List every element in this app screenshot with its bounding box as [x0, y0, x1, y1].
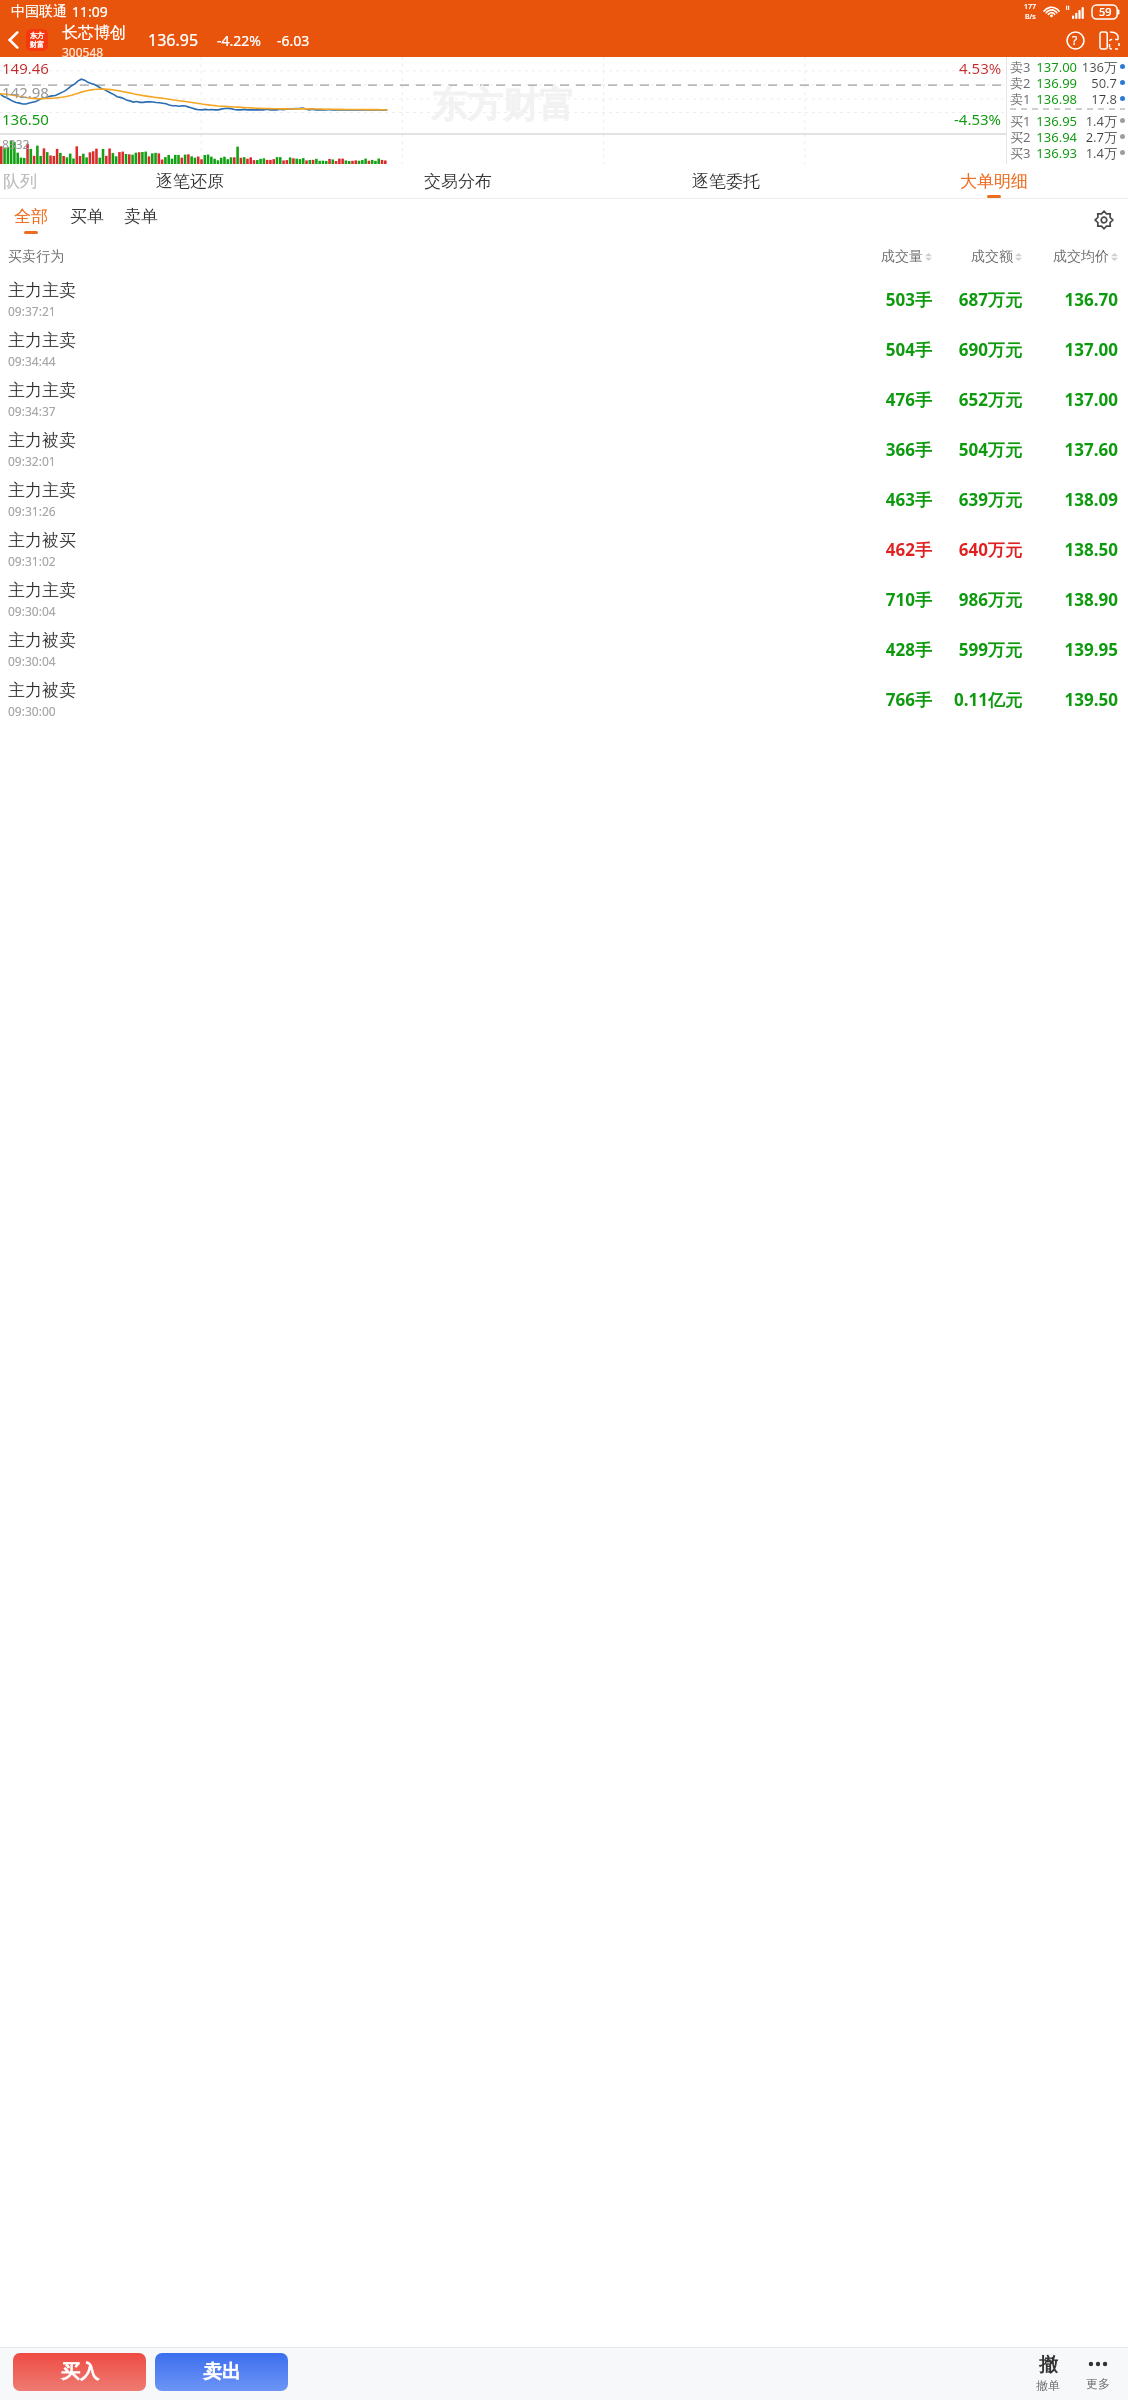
- staticText: 17.8万: [1081, 90, 1117, 106]
- staticText: 09:32:01: [8, 453, 56, 469]
- staticText: 队列: [3, 171, 37, 192]
- staticText: ?: [1072, 32, 1078, 48]
- staticText: 买单: [70, 206, 104, 227]
- button[interactable]: 买入: [13, 2353, 146, 2391]
- staticText: 59: [1099, 4, 1112, 19]
- button[interactable]: 主力主卖: [0, 374, 1128, 424]
- staticText: 136.50: [2, 109, 49, 129]
- staticText: 更多: [1086, 2376, 1110, 2391]
- button[interactable]: 撤: [1026, 2353, 1070, 2391]
- button[interactable]: 卖出: [155, 2353, 288, 2391]
- staticText: 撤单: [1036, 2378, 1060, 2391]
- staticText: 主力主卖: [8, 280, 76, 301]
- staticText: 710手: [844, 588, 932, 611]
- button[interactable]: 买2: [1010, 128, 1125, 144]
- button[interactable]: 队列: [0, 164, 56, 199]
- button[interactable]: 主力主卖: [0, 574, 1128, 624]
- staticText: 逐笔还原: [156, 171, 224, 192]
- staticText: 139.95: [1022, 638, 1118, 661]
- staticText: 主力主卖: [8, 330, 76, 351]
- staticText: 买卖行为: [8, 248, 64, 266]
- button[interactable]: 卖3: [1010, 58, 1125, 74]
- staticText: 主力被买: [8, 530, 76, 551]
- staticText: 138.90: [1022, 588, 1118, 611]
- staticText: 交易分布: [424, 171, 492, 192]
- staticText: 逐笔委托: [692, 171, 760, 192]
- staticText: 139.50: [1022, 688, 1118, 711]
- staticText: 成交均价: [1053, 248, 1109, 266]
- staticText: 640万元: [932, 538, 1022, 561]
- button[interactable]: 主力被卖: [0, 624, 1128, 674]
- button[interactable]: 买1: [1010, 112, 1125, 128]
- button[interactable]: Settings: [1084, 200, 1124, 240]
- button[interactable]: 更多: [1076, 2353, 1120, 2391]
- staticText: 09:30:04: [8, 653, 56, 669]
- button[interactable]: 大单明细: [860, 164, 1128, 199]
- button[interactable]: 主力主卖: [0, 474, 1128, 524]
- button[interactable]: 逐笔还原: [56, 164, 324, 199]
- button[interactable]: 主力被卖: [0, 424, 1128, 474]
- button[interactable]: 成交均价: [1022, 248, 1118, 266]
- staticText: 09:34:37: [8, 403, 56, 419]
- button[interactable]: 卖单: [124, 206, 158, 234]
- staticText: 大单明细: [960, 171, 1028, 192]
- staticText: 09:34:44: [8, 353, 56, 369]
- button[interactable]: Back: [0, 23, 26, 57]
- staticText: 卖3: [1010, 58, 1036, 74]
- staticText: 主力被卖: [8, 630, 76, 651]
- staticText: -4.53%: [954, 109, 1002, 129]
- button[interactable]: 成交量: [844, 248, 932, 266]
- staticText: 0.11亿元: [932, 688, 1022, 711]
- staticText: 买1: [1010, 112, 1036, 128]
- button[interactable]: East Money: [26, 29, 48, 51]
- staticText: 长芯博创: [62, 23, 126, 43]
- staticText: 137.60: [1022, 438, 1118, 461]
- staticText: 136.95: [148, 29, 199, 51]
- staticText: 137.00: [1022, 388, 1118, 411]
- button[interactable]: 主力主卖: [0, 324, 1128, 374]
- staticText: 138.50: [1022, 538, 1118, 561]
- staticText: 504万元: [932, 438, 1022, 461]
- staticText: 东方财富: [431, 82, 575, 127]
- button[interactable]: 交易分布: [324, 164, 592, 199]
- button[interactable]: 卖2: [1010, 74, 1125, 90]
- button[interactable]: Layout: [1092, 23, 1126, 57]
- staticText: 卖2: [1010, 74, 1036, 90]
- button[interactable]: Help: [1058, 23, 1092, 57]
- button[interactable]: 逐笔委托: [592, 164, 860, 199]
- staticText: 639万元: [932, 488, 1022, 511]
- button[interactable]: 主力被买: [0, 524, 1128, 574]
- staticText: 东方: [30, 31, 44, 40]
- button[interactable]: 卖1: [1010, 90, 1125, 106]
- button[interactable]: 买3: [1010, 144, 1125, 160]
- staticText: 买3: [1010, 144, 1036, 160]
- staticText: 599万元: [932, 638, 1022, 661]
- staticText: 成交额: [971, 248, 1013, 266]
- staticText: 687万元: [932, 288, 1022, 311]
- staticText: 4.53%: [959, 58, 1002, 78]
- staticText: 主力被卖: [8, 430, 76, 451]
- staticText: 463手: [844, 488, 932, 511]
- staticText: 476手: [844, 388, 932, 411]
- staticText: 主力被卖: [8, 680, 76, 701]
- staticText: 09:31:26: [8, 503, 56, 519]
- staticText: 504手: [844, 338, 932, 361]
- button[interactable]: 主力主卖: [0, 274, 1128, 324]
- staticText: 1.4万: [1081, 112, 1117, 128]
- button[interactable]: 成交额: [932, 248, 1022, 266]
- staticText: 中国联通: [11, 3, 67, 21]
- staticText: 136.98: [1036, 90, 1077, 106]
- button[interactable]: 东方财富: [0, 57, 1006, 164]
- button[interactable]: 主力被卖: [0, 674, 1128, 724]
- staticText: 138.09: [1022, 488, 1118, 511]
- staticText: 136.70: [1022, 288, 1118, 311]
- staticText: 136.99: [1036, 74, 1077, 90]
- staticText: 1.4万: [1081, 144, 1117, 160]
- button[interactable]: 全部: [14, 206, 48, 234]
- button[interactable]: 买单: [70, 206, 104, 234]
- staticText: 137.00: [1022, 338, 1118, 361]
- staticText: 买入: [61, 2360, 99, 2384]
- staticText: 136万: [1081, 58, 1117, 74]
- staticText: 全部: [14, 206, 48, 227]
- staticText: 11:09: [72, 2, 108, 21]
